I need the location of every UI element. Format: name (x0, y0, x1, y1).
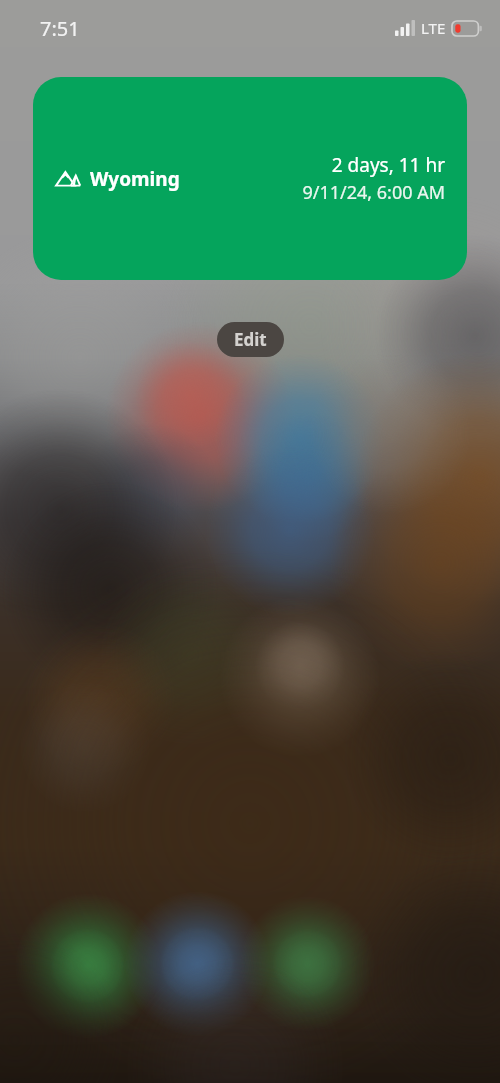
staticText: Edit (234, 328, 267, 351)
staticText: 7:51 (40, 15, 80, 42)
staticText: Wyoming (90, 166, 180, 192)
button[interactable]: Edit (217, 322, 284, 357)
button[interactable]: Mountain (33, 77, 467, 280)
other: Mountain (55, 168, 81, 190)
staticText: 2 days, 11 hr (331, 152, 445, 178)
staticText: 9/11/24, 6:00 AM (302, 180, 445, 205)
staticText: LTE (421, 18, 446, 38)
